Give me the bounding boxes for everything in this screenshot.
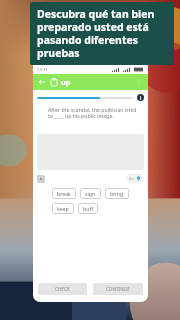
staticText: i bbox=[140, 95, 142, 101]
staticText: After the scandal, the politician tried … bbox=[48, 106, 140, 120]
button[interactable]: CONTINUE bbox=[93, 283, 143, 295]
staticText: up bbox=[61, 77, 71, 87]
button[interactable]: buff bbox=[78, 203, 98, 214]
staticText: bring bbox=[110, 190, 124, 197]
button[interactable]: Help bbox=[137, 94, 144, 101]
staticText: CONTINUE bbox=[106, 286, 130, 292]
button[interactable]: keep bbox=[52, 203, 74, 214]
button[interactable]: Keyboard bbox=[37, 175, 45, 183]
button[interactable]: More options bbox=[134, 77, 144, 87]
button[interactable]: break bbox=[52, 188, 76, 199]
staticText: Descubra qué tan bien preparado usted es… bbox=[37, 7, 167, 60]
button[interactable]: CHECK bbox=[38, 283, 87, 295]
button[interactable]: Back bbox=[37, 77, 47, 87]
staticText: break bbox=[57, 190, 71, 197]
staticText: CHECK bbox=[55, 286, 70, 292]
staticText: sign bbox=[85, 190, 96, 197]
staticText: 13:11 bbox=[37, 67, 48, 73]
staticText: buff bbox=[83, 205, 93, 212]
button[interactable]: sign bbox=[80, 188, 101, 199]
button[interactable]: bring bbox=[105, 188, 129, 199]
staticText: keep bbox=[57, 205, 69, 212]
button[interactable]: Hint bbox=[126, 174, 144, 183]
